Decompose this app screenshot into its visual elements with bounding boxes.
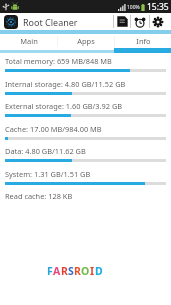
staticText: Main — [20, 36, 38, 46]
staticText: Data: 4.80 GB/11.62 GB — [5, 146, 86, 156]
staticText: A — [53, 264, 61, 278]
button[interactable]: Settings — [150, 13, 166, 30]
staticText: Root Cleaner — [23, 16, 78, 28]
staticText: System: 1.31 GB/1.51 GB — [5, 169, 91, 179]
staticText: Info — [136, 36, 151, 46]
button[interactable]: Internal storage: 4.80 GB/11.52 GB — [0, 76, 171, 98]
button[interactable]: Info — [115, 34, 171, 48]
staticText: O — [81, 264, 90, 278]
staticText: R — [61, 264, 68, 278]
button[interactable]: Apps — [58, 34, 114, 48]
button[interactable]: Data: 4.80 GB/11.62 GB — [0, 143, 171, 165]
staticText: R — [74, 264, 81, 278]
staticText: D — [95, 264, 103, 278]
button[interactable]: Boost timer — [131, 13, 149, 30]
staticText: Cache: 17.00 MB/984.00 MB — [5, 124, 102, 134]
staticText: Internal storage: 4.80 GB/11.52 GB — [5, 79, 126, 89]
staticText: I — [90, 264, 95, 278]
button[interactable]: System: 1.31 GB/1.51 GB — [0, 166, 171, 188]
button[interactable]: Cache: 17.00 MB/984.00 MB — [0, 121, 171, 143]
staticText: S — [68, 264, 74, 278]
button[interactable]: Files — [114, 13, 130, 30]
staticText: Read cache: 128 KB — [5, 191, 73, 201]
staticText: Total memory: 659 MB/848 MB — [5, 56, 112, 66]
staticText: External storage: 1.60 GB/3.92 GB — [5, 101, 123, 111]
button[interactable]: External storage: 1.60 GB/3.92 GB — [0, 98, 171, 120]
staticText: 100% — [127, 4, 140, 11]
staticText: Apps — [77, 36, 95, 46]
staticText: F — [47, 264, 53, 278]
staticText: 15:35 — [147, 1, 169, 13]
button[interactable]: Total memory: 659 MB/848 MB — [0, 53, 171, 75]
button[interactable]: Read cache: 128 KB — [0, 188, 171, 210]
button[interactable]: Main — [0, 34, 57, 48]
